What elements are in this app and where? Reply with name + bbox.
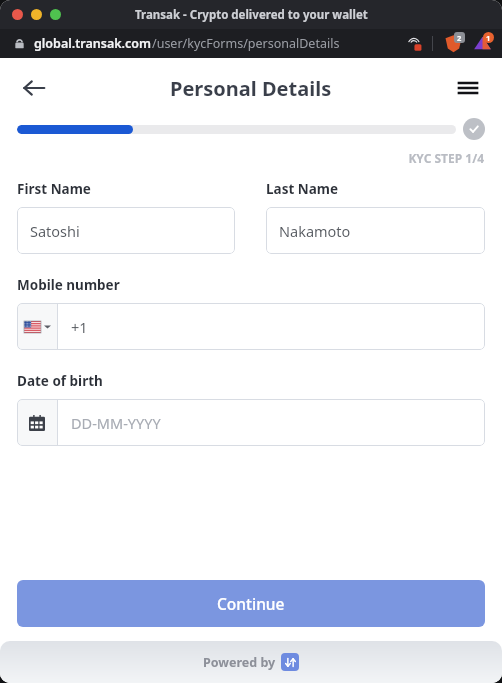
button[interactable]: Continue bbox=[17, 580, 485, 627]
other: Pick date bbox=[17, 399, 57, 446]
other: Extension bbox=[473, 34, 492, 53]
button[interactable]: Pick date bbox=[17, 399, 485, 446]
other: Transak bbox=[281, 653, 299, 671]
staticText: Powered by bbox=[203, 654, 276, 671]
staticText: First Name bbox=[17, 180, 91, 198]
button[interactable]: Satoshi bbox=[17, 207, 235, 254]
button[interactable]: Select country code bbox=[17, 303, 485, 350]
button[interactable]: Nakamoto bbox=[266, 207, 485, 254]
staticText: Continue bbox=[217, 593, 285, 614]
staticText: Mobile number bbox=[17, 276, 120, 294]
staticText: Personal Details bbox=[170, 75, 332, 102]
staticText: Date of birth bbox=[17, 372, 103, 390]
staticText: Satoshi bbox=[30, 221, 80, 241]
staticText: 1 bbox=[486, 33, 491, 43]
staticText: /user/kycForms/personalDetails bbox=[152, 35, 340, 52]
staticText: 2 bbox=[457, 33, 462, 43]
staticText: KYC STEP 1/4 bbox=[0, 150, 484, 166]
staticText: Nakamoto bbox=[279, 221, 351, 241]
other: Site permissions bbox=[408, 37, 422, 51]
other: Shields bbox=[444, 34, 463, 53]
staticText: +1 bbox=[71, 317, 88, 337]
button[interactable]: Menu bbox=[450, 70, 486, 106]
staticText: DD-MM-YYYY bbox=[71, 413, 161, 433]
staticText: Last Name bbox=[266, 180, 339, 198]
staticText: Transak - Crypto delivered to your walle… bbox=[135, 7, 368, 23]
other: Select country code bbox=[17, 303, 57, 350]
staticText: global.transak.com bbox=[34, 35, 152, 52]
button[interactable]: Back bbox=[16, 70, 52, 106]
